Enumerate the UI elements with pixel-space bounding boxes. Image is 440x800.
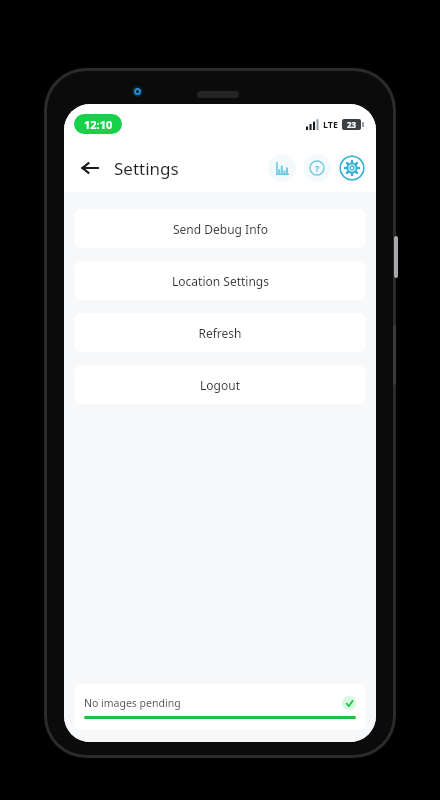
button[interactable]: Refresh <box>74 313 366 352</box>
staticText: ? <box>315 162 320 174</box>
staticText: LTE <box>323 118 339 130</box>
staticText: 23 <box>347 119 357 130</box>
button[interactable]: No images pending <box>74 684 366 730</box>
button[interactable]: Send Debug Info <box>74 209 366 248</box>
staticText: Location Settings <box>172 273 269 289</box>
button[interactable]: Logout <box>74 365 366 404</box>
button[interactable]: Back <box>74 152 106 184</box>
staticText: 12:10 <box>84 117 113 132</box>
staticText: Send Debug Info <box>173 221 268 237</box>
staticText: Logout <box>200 377 240 393</box>
button[interactable]: Location Settings <box>74 261 366 300</box>
staticText: Settings <box>114 157 179 180</box>
button[interactable]: Help <box>303 154 331 182</box>
button[interactable]: Statistics <box>268 154 296 182</box>
button[interactable]: Settings <box>338 154 366 182</box>
staticText: No images pending <box>84 696 181 710</box>
staticText: Refresh <box>198 325 242 341</box>
